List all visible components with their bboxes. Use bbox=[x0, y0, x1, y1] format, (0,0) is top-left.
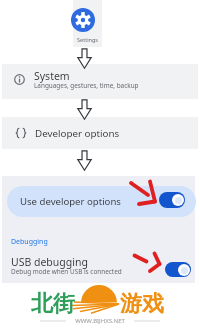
staticText: Use developer options bbox=[20, 195, 121, 208]
staticText: USB debugging bbox=[11, 255, 88, 269]
staticText: Languages, gestures, time, backup bbox=[34, 81, 139, 90]
button[interactable]: Developer options bbox=[2, 117, 198, 149]
staticText: 游戏 bbox=[120, 290, 164, 318]
staticText: Debugging bbox=[11, 237, 48, 247]
button[interactable]: Use developer options bbox=[7, 186, 196, 217]
button[interactable]: USB debugging bbox=[11, 255, 151, 277]
button[interactable]: Settings bbox=[73, 0, 102, 47]
staticText: System bbox=[34, 69, 70, 83]
staticText: Debug mode when USB is connected bbox=[11, 267, 122, 276]
staticText: 北街 bbox=[31, 290, 75, 318]
staticText: WWW.BIJHXS.NET bbox=[0, 317, 200, 325]
button[interactable]: Toggle on bbox=[165, 262, 191, 277]
staticText: Developer options bbox=[35, 127, 120, 140]
button[interactable]: System bbox=[2, 64, 198, 99]
button[interactable]: Toggle on bbox=[159, 192, 185, 208]
staticText: Settings bbox=[73, 36, 102, 43]
